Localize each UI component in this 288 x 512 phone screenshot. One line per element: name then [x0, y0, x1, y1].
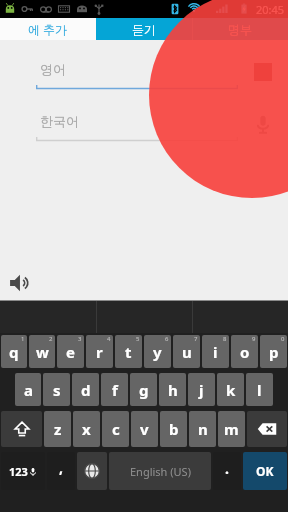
button[interactable]: e — [57, 335, 84, 368]
staticText: j — [199, 380, 204, 400]
staticText: 2 — [49, 335, 53, 343]
staticText: , — [59, 458, 63, 477]
staticText: v — [140, 419, 149, 439]
staticText: u — [182, 342, 192, 362]
staticText: a — [24, 380, 33, 400]
staticText: 0 — [281, 335, 285, 343]
button[interactable]: Backspace — [247, 411, 287, 447]
button[interactable]: l — [246, 373, 273, 406]
button[interactable]: h — [159, 373, 186, 406]
staticText: k — [226, 380, 236, 400]
button[interactable]: Change language — [77, 452, 107, 490]
button[interactable]: w — [29, 335, 55, 368]
staticText: 6 — [165, 335, 169, 343]
button[interactable]: j — [188, 373, 215, 406]
staticText: o — [240, 342, 250, 362]
button[interactable]: Play audio — [6, 268, 36, 298]
button[interactable]: x — [73, 411, 100, 447]
staticText: r — [96, 342, 103, 362]
button[interactable]: t — [115, 335, 142, 368]
staticText: 7 — [194, 335, 198, 343]
staticText: b — [169, 419, 179, 439]
staticText: 3 — [78, 335, 82, 343]
staticText: n — [198, 419, 208, 439]
button[interactable]: 123 — [1, 452, 45, 490]
button[interactable]: b — [160, 411, 187, 447]
staticText: m — [224, 419, 239, 439]
staticText: 영어 — [40, 61, 66, 77]
button[interactable]: s — [43, 373, 70, 406]
button[interactable]: m — [218, 411, 245, 447]
button[interactable]: Colour — [246, 55, 280, 89]
staticText: t — [125, 342, 132, 362]
button[interactable]: 한국어 — [36, 106, 238, 142]
button[interactable]: y — [144, 335, 171, 368]
staticText: 명부 — [228, 22, 252, 37]
button[interactable]: k — [217, 373, 244, 406]
staticText: p — [269, 342, 279, 362]
button[interactable]: 영어 — [36, 54, 238, 90]
button[interactable]: g — [130, 373, 157, 406]
button[interactable]: English (US) — [109, 452, 211, 490]
staticText: l — [257, 380, 262, 400]
button[interactable]: 에 추가 — [0, 18, 96, 40]
button[interactable]: 명부 — [192, 18, 288, 40]
staticText: e — [66, 342, 75, 362]
button[interactable]: . — [213, 452, 241, 490]
button[interactable]: n — [189, 411, 216, 447]
staticText: 5 — [136, 335, 140, 343]
staticText: 1 — [21, 335, 25, 343]
button[interactable]: OK — [243, 452, 287, 490]
button[interactable]: v — [131, 411, 158, 447]
staticText: i — [213, 342, 218, 362]
staticText: q — [9, 342, 19, 362]
staticText: s — [53, 380, 61, 400]
staticText: y — [153, 342, 162, 362]
staticText: 123 — [9, 464, 28, 479]
staticText: . — [225, 459, 229, 478]
button[interactable]: z — [44, 411, 71, 447]
staticText: 8 — [223, 335, 227, 343]
staticText: c — [112, 419, 120, 439]
button[interactable]: , — [47, 452, 75, 490]
button[interactable]: p — [260, 335, 287, 368]
staticText: OK — [256, 463, 274, 479]
button[interactable]: a — [15, 373, 41, 406]
staticText: f — [112, 380, 118, 400]
button[interactable]: u — [173, 335, 200, 368]
staticText: 에 추가 — [28, 21, 68, 37]
staticText: g — [139, 380, 149, 400]
staticText: 4 — [107, 335, 111, 343]
button[interactable]: r — [86, 335, 113, 368]
staticText: x — [82, 419, 91, 439]
button[interactable]: 듣기 — [96, 18, 192, 40]
staticText: 9 — [252, 335, 256, 343]
staticText: w — [36, 342, 49, 362]
staticText: English (US) — [130, 464, 191, 479]
button[interactable]: o — [231, 335, 258, 368]
button[interactable]: f — [101, 373, 128, 406]
button[interactable]: i — [202, 335, 229, 368]
staticText: d — [81, 380, 91, 400]
staticText: 20:45 — [256, 2, 285, 17]
staticText: 듣기 — [132, 22, 156, 37]
staticText: z — [54, 419, 62, 439]
button[interactable]: c — [102, 411, 129, 447]
button[interactable]: d — [72, 373, 99, 406]
staticText: 한국어 — [40, 113, 79, 129]
button[interactable]: q — [1, 335, 27, 368]
staticText: h — [168, 380, 178, 400]
button[interactable]: Shift — [1, 411, 42, 447]
